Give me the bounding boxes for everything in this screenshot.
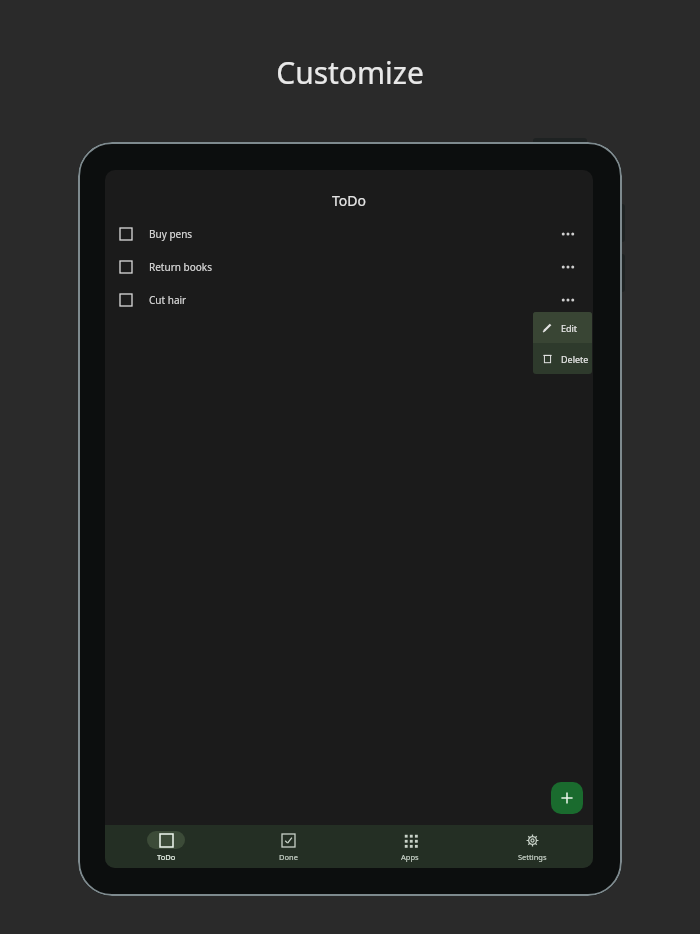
button[interactable]: Return books	[105, 254, 593, 280]
staticText: ToDo	[332, 191, 366, 210]
button[interactable]: Delete	[533, 343, 592, 374]
button[interactable]: Cut hair	[105, 287, 593, 313]
staticText: Customize	[276, 52, 424, 93]
staticText: Cut hair	[149, 293, 187, 307]
staticText: Settings	[518, 852, 547, 862]
button[interactable]: ToDo	[105, 825, 227, 868]
button[interactable]: Settings	[471, 825, 593, 868]
staticText: Buy pens	[149, 227, 193, 241]
button[interactable]: Apps	[349, 825, 471, 868]
button[interactable]: Add task	[551, 782, 583, 814]
staticText: Edit	[561, 322, 578, 334]
staticText: ToDo	[157, 852, 176, 862]
staticText: Return books	[149, 260, 212, 274]
button[interactable]: Edit	[533, 312, 592, 343]
button[interactable]: More options	[559, 291, 577, 309]
staticText: Delete	[561, 353, 589, 365]
staticText: Apps	[401, 852, 419, 862]
button[interactable]: More options	[559, 225, 577, 243]
button[interactable]: More options	[559, 258, 577, 276]
staticText: Done	[279, 852, 298, 862]
button[interactable]: Buy pens	[105, 221, 593, 247]
button[interactable]: Done	[227, 825, 349, 868]
